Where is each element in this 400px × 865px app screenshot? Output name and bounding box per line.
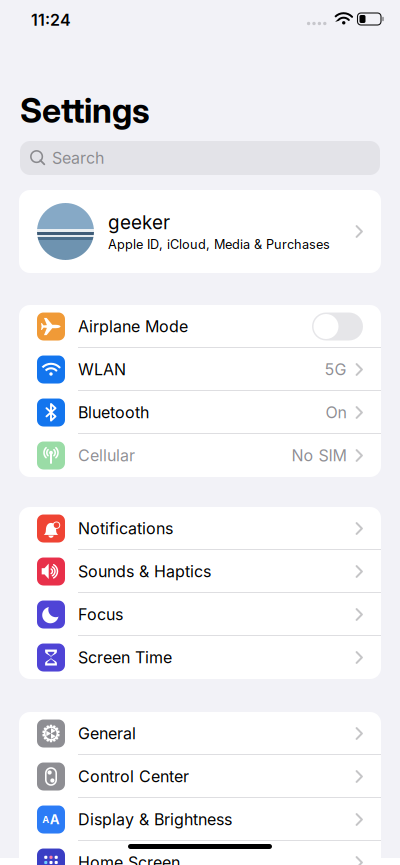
button[interactable]: Focus — [19, 593, 381, 636]
button[interactable]: Cellular — [19, 434, 381, 477]
staticText: Notifications — [78, 519, 173, 538]
staticText: A — [50, 811, 60, 827]
staticText: Bluetooth — [78, 403, 149, 422]
staticText: Cellular — [78, 446, 135, 465]
staticText: Search — [52, 148, 104, 168]
button[interactable]: Airplane Mode — [19, 305, 381, 348]
staticText: WLAN — [78, 360, 126, 379]
button[interactable]: General — [19, 712, 381, 755]
staticText: Display & Brightness — [78, 810, 232, 829]
staticText: On — [325, 403, 346, 422]
button[interactable]: Search — [20, 141, 380, 175]
button[interactable]: WLAN — [19, 348, 381, 391]
staticText: Screen Time — [78, 648, 172, 667]
button[interactable]: Notifications — [19, 507, 381, 550]
staticText: 11:24 — [31, 10, 71, 30]
staticText: Control Center — [78, 767, 189, 786]
staticText: Airplane Mode — [78, 317, 188, 336]
staticText: geeker — [108, 211, 170, 234]
button[interactable]: geeker — [19, 190, 381, 273]
staticText: A — [42, 814, 49, 825]
staticText: Home Screen — [78, 853, 180, 865]
button[interactable]: Control Center — [19, 755, 381, 798]
staticText: 5G — [324, 360, 346, 379]
staticText: Settings — [20, 90, 150, 131]
staticText: Focus — [78, 605, 123, 624]
button[interactable]: Home Screen — [19, 841, 381, 865]
staticText: Apple ID, iCloud, Media & Purchases — [108, 237, 330, 252]
staticText: General — [78, 724, 136, 743]
button[interactable]: Bluetooth — [19, 391, 381, 434]
button[interactable]: A — [19, 798, 381, 841]
button[interactable]: Sounds & Haptics — [19, 550, 381, 593]
button[interactable]: Screen Time — [19, 636, 381, 679]
staticText: No SIM — [291, 446, 346, 465]
staticText: Sounds & Haptics — [78, 562, 211, 581]
